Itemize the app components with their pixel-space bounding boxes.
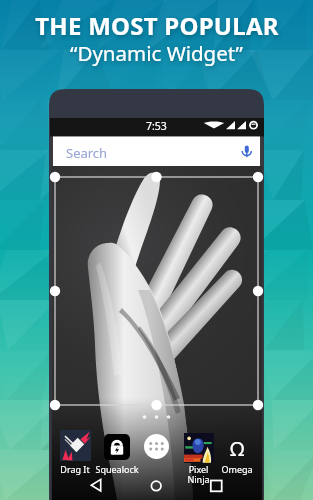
button[interactable]: Recent apps (201, 474, 231, 498)
button[interactable]: Ω (213, 435, 261, 459)
staticText: Omega (221, 463, 253, 475)
button[interactable]: Search (55, 136, 260, 166)
button[interactable]: Home (141, 474, 171, 498)
staticText: “Dynamic Widget” (70, 39, 243, 67)
staticText: 7:53 (146, 119, 167, 133)
button[interactable]: All apps (144, 434, 169, 459)
staticText: Ω (230, 435, 245, 459)
staticText: Search (66, 144, 108, 162)
button[interactable]: Drag It (51, 430, 99, 461)
button[interactable]: Voice search (236, 139, 258, 163)
button[interactable]: Pixel Ninja (183, 433, 214, 463)
staticText: Drag It (60, 463, 90, 475)
staticText: THE MOST POPULAR (35, 9, 279, 42)
staticText: Squealock (95, 463, 139, 475)
button[interactable]: Squealock (93, 434, 141, 460)
button[interactable]: Back (80, 474, 112, 498)
staticText: Pixel Ninja (183, 463, 214, 485)
